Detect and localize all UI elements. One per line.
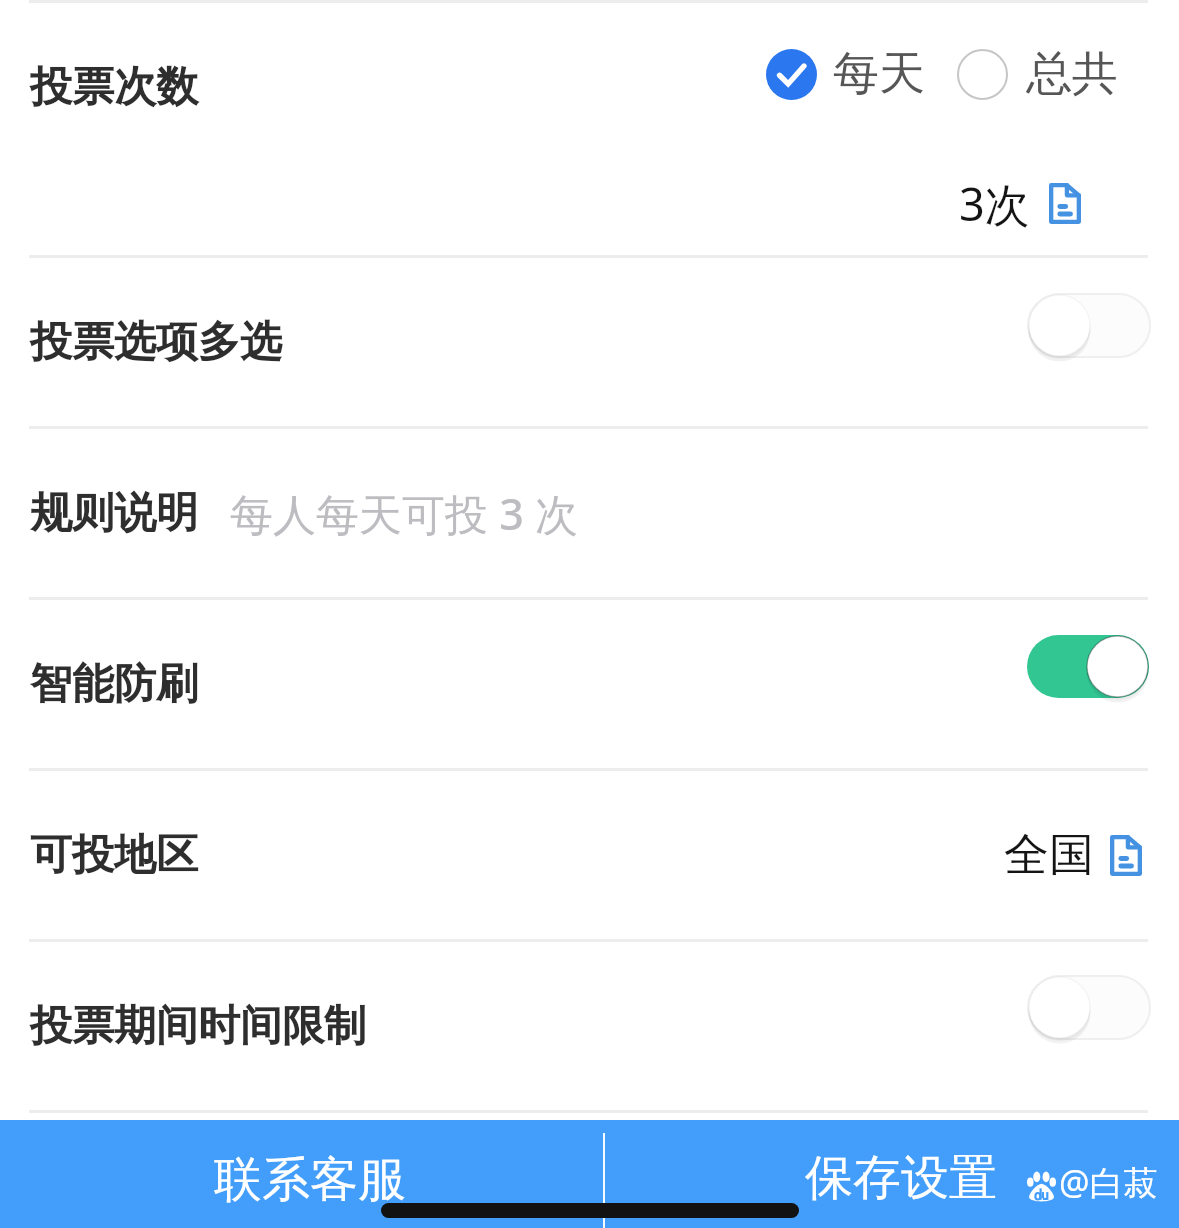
button[interactable]: 投票期间时间限制开关	[1028, 976, 1150, 1039]
staticText: 投票次数	[30, 61, 198, 114]
button[interactable]: 联系客服	[0, 1120, 604, 1228]
staticText: 总共	[1026, 45, 1118, 103]
other: Edit	[1110, 835, 1142, 876]
staticText: 智能防刷	[30, 658, 198, 711]
staticText: 全国	[1004, 827, 1094, 884]
button[interactable]: 3次	[959, 173, 1081, 234]
staticText: 可投地区	[30, 829, 198, 882]
button[interactable]: 投票选项多选	[0, 258, 1179, 427]
staticText: 投票选项多选	[30, 316, 282, 369]
button[interactable]: 总共	[951, 39, 1124, 109]
staticText: 每天	[833, 45, 925, 103]
staticText: 保存设置	[805, 1148, 997, 1208]
staticText: @白菽	[1059, 1159, 1158, 1205]
button[interactable]: 投票期间时间限制	[0, 942, 1179, 1110]
button[interactable]: 每天	[760, 39, 931, 109]
button[interactable]: 可投地区	[0, 771, 1179, 939]
staticText: 规则说明	[30, 487, 198, 540]
button[interactable]: 智能防刷开关	[1027, 635, 1149, 698]
staticText: 每人每天可投 3 次	[230, 484, 578, 543]
button[interactable]: 保存设置	[604, 1120, 1179, 1228]
button[interactable]: 规则说明	[0, 429, 1179, 597]
other: Edit	[1049, 183, 1081, 224]
staticText: 投票期间时间限制	[30, 1000, 366, 1053]
staticText: 联系客服	[214, 1150, 406, 1210]
button[interactable]: 投票选项多选开关	[1028, 294, 1150, 357]
staticText: 3次	[959, 173, 1030, 234]
button[interactable]: 智能防刷	[0, 600, 1179, 768]
